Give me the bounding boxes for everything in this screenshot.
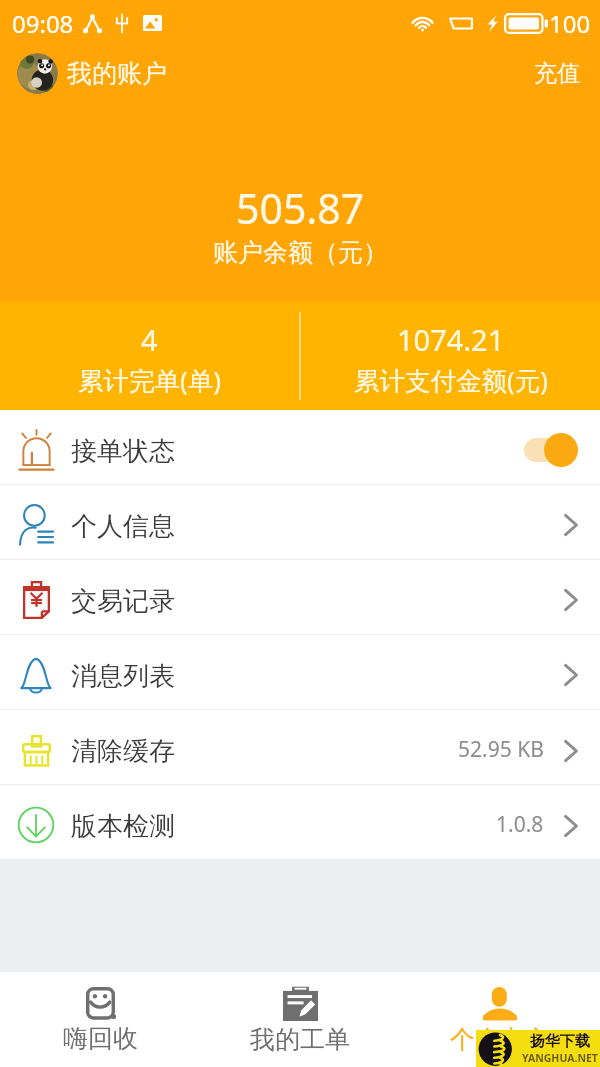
other: Open: [560, 738, 582, 764]
staticText: 100: [549, 7, 591, 40]
staticText: 清除缓存: [71, 735, 175, 768]
button[interactable]: 版本检测: [0, 785, 600, 859]
button[interactable]: 我的工单: [200, 986, 400, 1053]
staticText: 4: [141, 320, 158, 359]
staticText: 扬华下载: [530, 1032, 590, 1051]
button[interactable]: 消息列表: [0, 635, 600, 709]
staticText: 09:08: [12, 7, 74, 40]
staticText: YANGHUA.NET: [522, 1051, 598, 1065]
button[interactable]: 1074.21: [301, 314, 600, 398]
staticText: 消息列表: [71, 660, 175, 693]
other: Open: [560, 813, 582, 839]
staticText: 嗨回收: [63, 1023, 138, 1054]
other: Open: [560, 662, 582, 688]
button[interactable]: 个人中心: [400, 987, 600, 1053]
button[interactable]: 嗨回收: [0, 987, 200, 1052]
button[interactable]: 清除缓存: [0, 710, 600, 784]
staticText: 1.0.8: [496, 810, 544, 839]
staticText: 充值: [534, 59, 580, 88]
button[interactable]: 充值: [530, 53, 584, 94]
button[interactable]: 4: [0, 314, 299, 398]
button[interactable]: Profile avatar: [17, 53, 58, 94]
staticText: 个人中心: [450, 1024, 550, 1055]
staticText: 我的工单: [250, 1024, 350, 1055]
button[interactable]: 接单状态: [0, 410, 600, 484]
button[interactable]: Order acceptance toggle: [524, 433, 578, 467]
staticText: 505.87: [236, 180, 365, 236]
other: Open: [560, 512, 582, 538]
staticText: 个人信息: [71, 510, 175, 543]
button[interactable]: 交易记录: [0, 560, 600, 634]
staticText: 累计支付金额(元): [354, 363, 548, 398]
staticText: 我的账户: [67, 58, 167, 89]
staticText: 账户余额（元）: [213, 237, 388, 268]
staticText: 52.95 KB: [458, 735, 544, 764]
button[interactable]: 个人信息: [0, 485, 600, 559]
other: Open: [560, 587, 582, 613]
staticText: 1074.21: [397, 320, 505, 359]
staticText: 版本检测: [71, 810, 175, 843]
staticText: 交易记录: [71, 585, 175, 618]
staticText: 接单状态: [71, 435, 175, 468]
staticText: 累计完单(单): [78, 363, 221, 398]
